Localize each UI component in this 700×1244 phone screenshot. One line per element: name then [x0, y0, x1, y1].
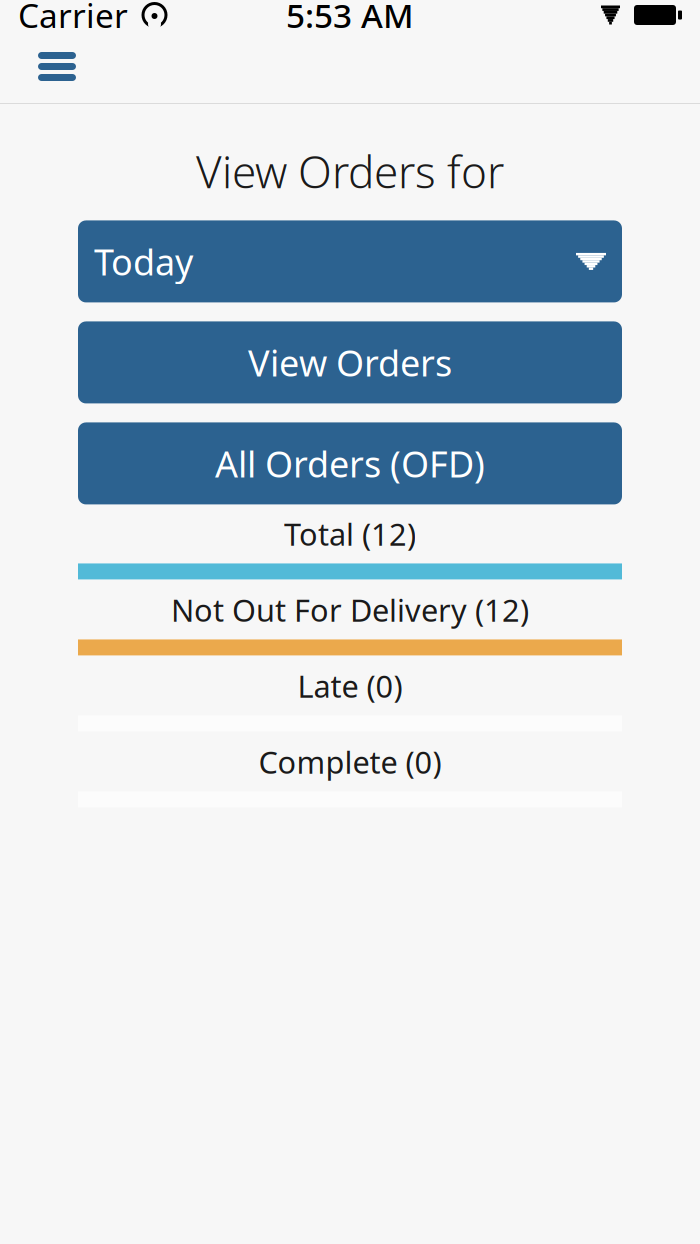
staticText: View Orders [248, 338, 452, 386]
button[interactable]: All Orders (OFD) [78, 422, 622, 504]
staticText: Total (12) [284, 514, 416, 554]
button[interactable]: Menu [0, 36, 94, 97]
button[interactable]: View Orders [78, 321, 622, 403]
button[interactable]: Today [78, 220, 622, 302]
staticText: View Orders for [196, 142, 504, 200]
staticText: Not Out For Delivery (12) [171, 590, 529, 630]
staticText: Carrier [18, 0, 128, 37]
staticText: Today [94, 237, 193, 285]
staticText: Complete (0) [258, 742, 441, 782]
staticText: Late (0) [297, 666, 402, 706]
staticText: 5:53 AM [286, 0, 414, 37]
staticText: All Orders (OFD) [215, 439, 485, 487]
